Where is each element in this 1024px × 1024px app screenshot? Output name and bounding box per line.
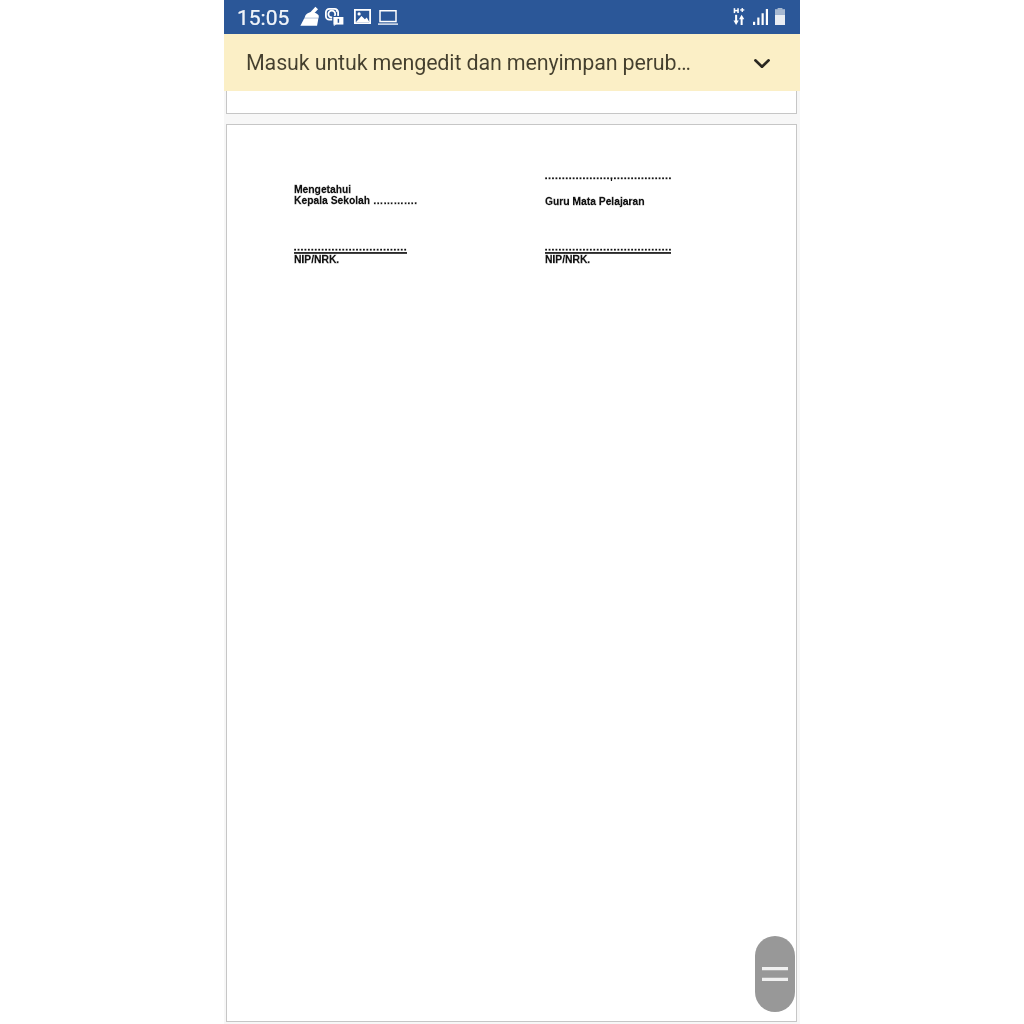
button[interactable]: Expand sign-in banner bbox=[738, 39, 786, 87]
staticText: Kepala Sekolah …………. bbox=[294, 195, 418, 207]
staticText: Masuk untuk mengedit dan menyimpan perub… bbox=[246, 50, 691, 75]
staticText: NIP/NRK. bbox=[294, 254, 340, 266]
button[interactable]: Masuk untuk mengedit dan menyimpan perub… bbox=[224, 34, 800, 91]
staticText: Mengetahui bbox=[294, 184, 352, 196]
staticText: NIP/NRK. bbox=[545, 254, 591, 266]
staticText: Guru Mata Pelajaran bbox=[545, 196, 645, 208]
staticText: 15:05 bbox=[237, 6, 290, 31]
button[interactable]: Scroll handle bbox=[755, 936, 795, 1012]
